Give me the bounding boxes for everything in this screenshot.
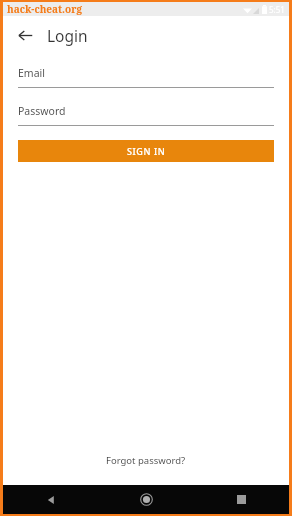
- button[interactable]: Email: [18, 66, 274, 88]
- staticText: Login: [47, 25, 88, 46]
- staticText: Email: [18, 66, 45, 80]
- staticText: Password: [18, 104, 66, 118]
- staticText: Forgot password?: [106, 454, 186, 467]
- button[interactable]: Back: [11, 21, 39, 49]
- staticText: hack-cheat.org: [7, 2, 83, 16]
- button[interactable]: Recent apps: [194, 485, 289, 514]
- staticText: SIGN IN: [127, 145, 166, 157]
- button[interactable]: Back: [3, 485, 99, 514]
- staticText: 5:51: [269, 4, 285, 15]
- button[interactable]: SIGN IN: [18, 140, 274, 162]
- button[interactable]: Forgot password?: [3, 454, 289, 467]
- button[interactable]: Password: [18, 104, 274, 126]
- button[interactable]: Home: [99, 485, 194, 514]
